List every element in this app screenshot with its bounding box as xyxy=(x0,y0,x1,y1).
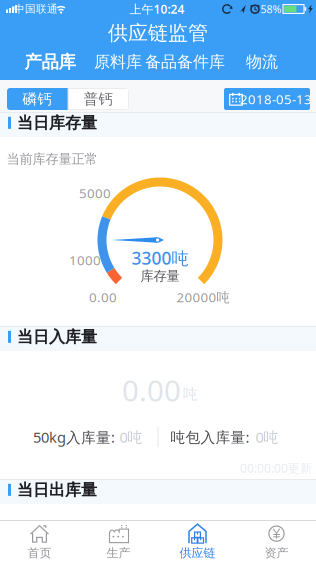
staticText: 供应链 xyxy=(179,546,215,560)
button[interactable]: 首页 xyxy=(0,521,79,562)
staticText: 产品库 xyxy=(24,51,75,73)
button[interactable]: 物流 xyxy=(246,47,278,77)
staticText: 0吨 xyxy=(255,427,278,447)
staticText: 库存量 xyxy=(140,268,179,284)
staticText: 生产 xyxy=(106,546,130,560)
staticText: 普钙 xyxy=(83,90,113,108)
staticText: 首页 xyxy=(27,546,51,560)
button[interactable]: 2018-05-13 xyxy=(224,88,310,110)
button[interactable]: 资产 xyxy=(237,521,316,562)
staticText: 5000 xyxy=(79,184,111,202)
staticText: 备品备件库 xyxy=(145,52,225,72)
staticText: 磷钙 xyxy=(22,90,52,108)
button[interactable]: 普钙 xyxy=(68,88,129,110)
staticText: 3300吨 xyxy=(131,246,188,269)
button[interactable]: 原料库 xyxy=(94,47,142,77)
staticText: 吨包入库量: xyxy=(170,427,249,447)
staticText: 当日库存量 xyxy=(17,113,97,133)
button[interactable]: 产品库 xyxy=(24,47,75,77)
staticText: 20000吨 xyxy=(176,288,229,306)
staticText: 1000 xyxy=(69,251,101,269)
button[interactable]: 磷钙 xyxy=(7,88,68,110)
staticText: 中国联通 xyxy=(14,2,58,15)
button[interactable]: 供应链 xyxy=(158,521,237,562)
button[interactable]: 备品备件库 xyxy=(145,47,225,77)
staticText: 当日出库量 xyxy=(17,480,97,500)
staticText: 资产 xyxy=(264,546,288,560)
staticText: 原料库 xyxy=(94,52,142,72)
staticText: 0.00 xyxy=(89,288,117,306)
staticText: 00:00:00更新 xyxy=(240,460,312,476)
staticText: 供应链监管 xyxy=(108,21,208,45)
staticText: 0.00 xyxy=(122,370,181,409)
staticText: 2018-05-13 xyxy=(240,90,312,108)
staticText: 当前库存量正常 xyxy=(6,151,97,167)
staticText: 当日入库量 xyxy=(17,327,97,347)
staticText: 上午10:24 xyxy=(129,1,184,17)
staticText: 0吨 xyxy=(119,427,142,447)
staticText: 58% xyxy=(260,2,281,16)
staticText: 物流 xyxy=(246,52,278,72)
staticText: 50kg入库量: xyxy=(33,427,115,447)
button[interactable]: 生产 xyxy=(79,521,158,562)
staticText: 吨 xyxy=(183,385,198,403)
